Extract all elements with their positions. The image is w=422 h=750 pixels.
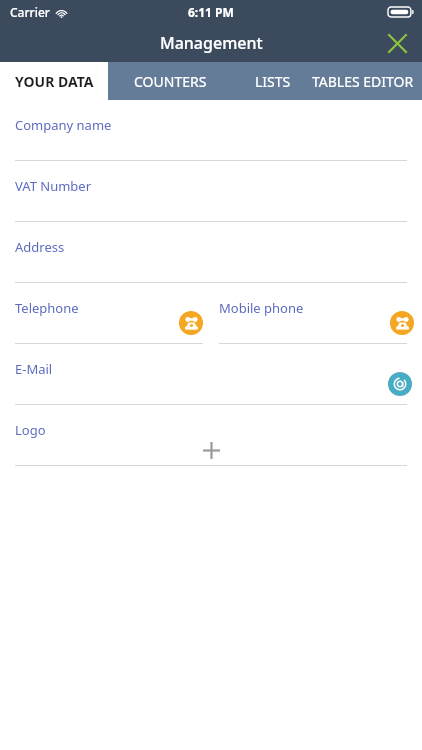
button[interactable]: Logo — [0, 405, 422, 466]
staticText: Mobile phone — [219, 299, 304, 317]
staticText: TABLES EDITOR — [312, 72, 414, 91]
button[interactable]: Call telephone — [179, 311, 203, 335]
button[interactable]: Telephone — [0, 283, 211, 344]
button[interactable]: TABLES EDITOR — [312, 62, 422, 100]
staticText: 6:11 PM — [188, 4, 234, 20]
button[interactable]: E-Mail — [0, 344, 422, 405]
staticText: YOUR DATA — [15, 72, 94, 91]
button[interactable]: YOUR DATA — [0, 62, 108, 100]
button[interactable]: LISTS — [233, 62, 312, 100]
staticText: Telephone — [15, 299, 79, 317]
staticText: LISTS — [255, 72, 291, 91]
button[interactable]: COUNTERS — [108, 62, 233, 100]
button[interactable]: Send e-mail — [388, 372, 412, 396]
button[interactable]: Company name — [0, 100, 422, 161]
staticText: Logo — [15, 421, 46, 439]
button[interactable]: Mobile phone — [211, 283, 422, 344]
button[interactable]: Close — [380, 26, 414, 60]
staticText: COUNTERS — [134, 72, 207, 91]
staticText: Carrier — [10, 4, 50, 20]
button[interactable]: VAT Number — [0, 161, 422, 222]
staticText: Company name — [15, 116, 112, 134]
staticText: E-Mail — [15, 360, 53, 378]
button[interactable]: Address — [0, 222, 422, 283]
staticText: Address — [15, 238, 65, 256]
staticText: Management — [160, 32, 263, 54]
button[interactable]: Add logo — [197, 436, 225, 464]
staticText: VAT Number — [15, 177, 92, 195]
button[interactable]: Call mobile phone — [390, 311, 414, 335]
